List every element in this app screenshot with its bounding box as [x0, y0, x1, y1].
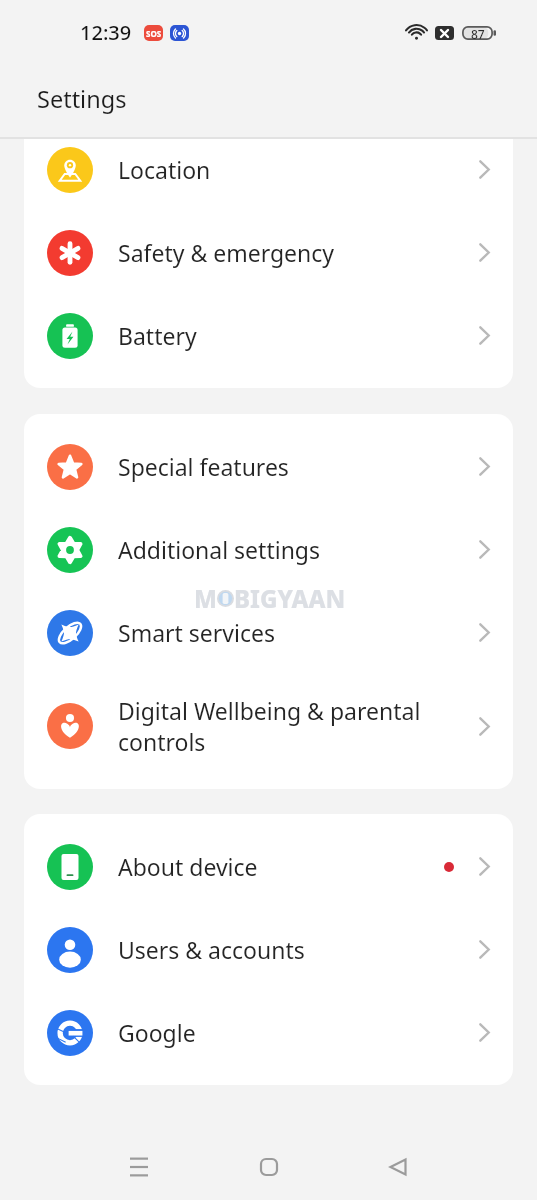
staticText: Settings: [37, 83, 127, 115]
staticText: Additional settings: [118, 534, 467, 565]
staticText: 12:39: [80, 19, 132, 46]
staticText: Users & accounts: [118, 934, 467, 965]
staticText: Safety & emergency: [118, 237, 467, 268]
staticText: 87: [471, 26, 485, 40]
button[interactable]: Users & accounts: [24, 908, 513, 991]
staticText: Location: [118, 154, 467, 185]
button[interactable]: Safety & emergency: [24, 211, 513, 294]
staticText: SOS: [146, 28, 162, 39]
staticText: M: [194, 582, 217, 615]
button[interactable]: Additional settings: [24, 508, 513, 591]
button[interactable]: Special features: [24, 425, 513, 508]
staticText: Battery: [118, 320, 467, 351]
button[interactable]: Location: [24, 139, 513, 211]
button[interactable]: Back: [369, 1138, 427, 1196]
button[interactable]: Home: [240, 1138, 298, 1196]
button[interactable]: Smart services: [24, 591, 513, 674]
button[interactable]: Google: [24, 991, 513, 1074]
staticText: BIGYAAN: [234, 582, 346, 615]
button[interactable]: Recents: [110, 1138, 168, 1196]
button[interactable]: About device: [24, 825, 513, 908]
button[interactable]: Battery: [24, 294, 513, 377]
button[interactable]: Digital Wellbeing & parental controls: [24, 674, 513, 778]
staticText: Smart services: [118, 617, 467, 648]
staticText: Google: [118, 1017, 467, 1048]
staticText: Special features: [118, 451, 467, 482]
staticText: About device: [118, 851, 432, 882]
staticText: Digital Wellbeing & parental controls: [118, 695, 467, 758]
